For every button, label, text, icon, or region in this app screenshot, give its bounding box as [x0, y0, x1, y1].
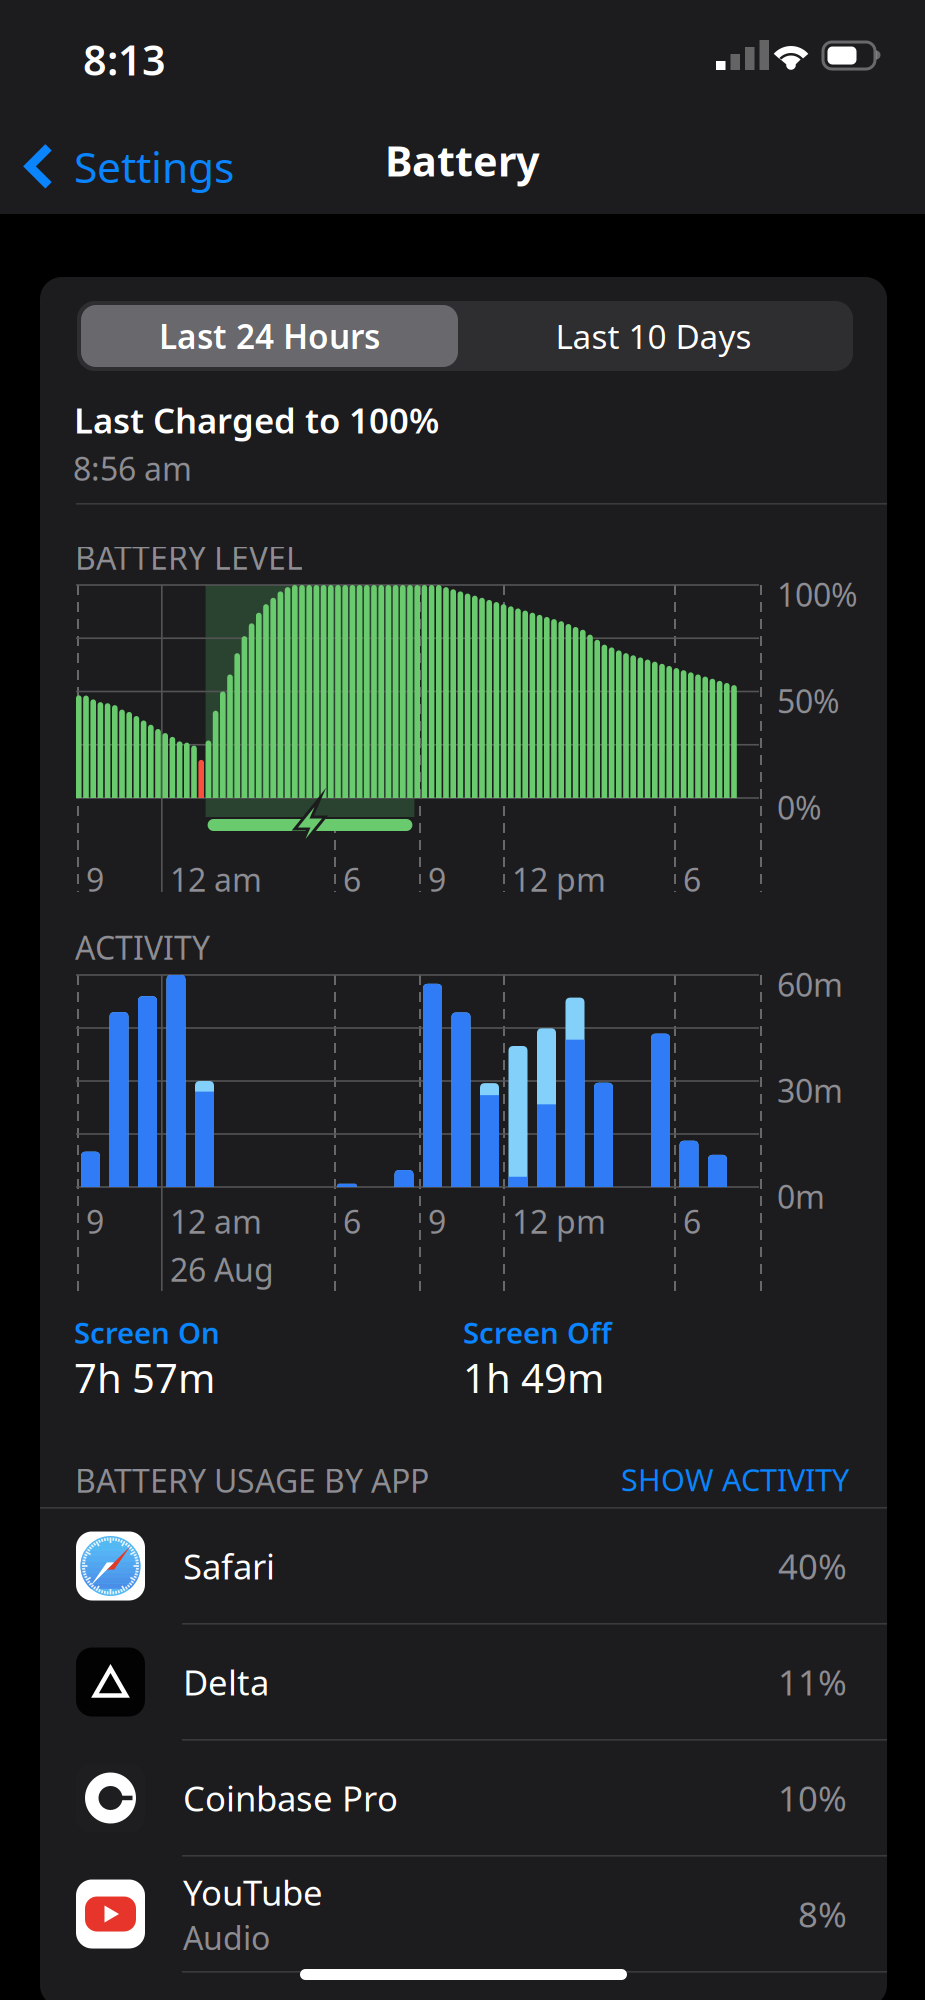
staticText: 6	[343, 858, 361, 900]
staticText: 12 am	[170, 858, 262, 900]
staticText: 1h 49m	[463, 1351, 604, 1404]
staticText: Last 10 Days	[555, 314, 751, 358]
staticText: 10%	[778, 1775, 847, 1821]
staticText: 6	[683, 858, 701, 900]
staticText: Battery	[385, 133, 540, 188]
button[interactable]: Settings	[15, 124, 244, 209]
staticText: 50%	[777, 679, 840, 722]
button[interactable]: Safari	[40, 1508, 887, 1624]
staticText: 9	[86, 1200, 104, 1242]
button[interactable]: YouTube	[40, 1856, 887, 1972]
staticText: 11%	[778, 1659, 847, 1705]
staticText: 9	[428, 858, 446, 900]
staticText: Screen Off	[463, 1313, 612, 1352]
staticText: 8%	[798, 1891, 847, 1937]
staticText: SHOW ACTIVITY	[621, 1459, 849, 1500]
staticText: 100%	[777, 573, 858, 615]
staticText: 8:56 am	[73, 447, 192, 489]
staticText: 12 pm	[512, 1200, 606, 1242]
staticText: BATTERY LEVEL	[75, 536, 303, 578]
staticText: 60m	[777, 963, 843, 1005]
staticText: Safari	[183, 1543, 275, 1589]
staticText: Coinbase Pro	[183, 1775, 398, 1821]
staticText: Delta	[183, 1659, 269, 1705]
staticText: BATTERY USAGE BY APP	[75, 1459, 429, 1501]
staticText: ACTIVITY	[75, 926, 210, 968]
staticText: 30m	[777, 1069, 843, 1111]
staticText: 12 pm	[512, 858, 606, 900]
staticText: 0%	[777, 786, 822, 828]
button[interactable]: SHOW ACTIVITY	[613, 1453, 857, 1506]
button[interactable]: Delta	[40, 1624, 887, 1740]
staticText: 26 Aug	[170, 1248, 274, 1290]
staticText: 6	[343, 1200, 361, 1242]
staticText: 0m	[777, 1175, 825, 1217]
staticText: Last 24 Hours	[159, 314, 380, 358]
button[interactable]: Last 10 Days	[458, 305, 849, 367]
staticText: Last Charged to 100%	[74, 397, 439, 443]
staticText: Audio	[183, 1916, 270, 1959]
staticText: 12 am	[170, 1200, 262, 1242]
staticText: 9	[86, 858, 104, 900]
staticText: Screen On	[74, 1313, 220, 1352]
staticText: 9	[428, 1200, 446, 1242]
staticText: Settings	[74, 138, 234, 195]
staticText: 6	[683, 1200, 701, 1242]
button[interactable]: Coinbase Pro	[40, 1740, 887, 1856]
button[interactable]: Last 24 Hours	[81, 305, 458, 367]
staticText: 40%	[778, 1543, 847, 1589]
staticText: 7h 57m	[74, 1351, 215, 1404]
staticText: 8:13	[83, 32, 166, 87]
staticText: YouTube	[183, 1869, 323, 1915]
